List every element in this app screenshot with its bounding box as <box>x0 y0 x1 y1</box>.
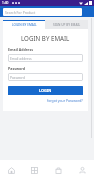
button[interactable]: Account <box>70 160 94 180</box>
button[interactable]: Email address <box>8 54 83 62</box>
button[interactable]: Cart <box>46 160 70 180</box>
button[interactable]: Password <box>8 73 83 81</box>
staticText: Password <box>8 66 26 71</box>
staticText: Search For Product <box>5 10 36 15</box>
staticText: LOGIN BY EMAIL <box>12 23 37 27</box>
staticText: forgot your Password? <box>47 98 83 103</box>
button[interactable]: SIGN UP BY EMAIL <box>45 20 88 29</box>
staticText: Email address <box>10 56 32 60</box>
staticText: Password <box>10 75 25 79</box>
button[interactable]: Categories <box>23 160 46 180</box>
button[interactable]: Search For Product <box>3 8 82 16</box>
staticText: SIGN UP BY EMAIL <box>53 23 81 27</box>
button[interactable]: forgot your Password? <box>47 98 83 103</box>
staticText: LOGIN BY EMAIL <box>21 34 70 42</box>
staticText: 1:40 <box>2 1 9 5</box>
button[interactable]: Home <box>0 160 23 180</box>
staticText: Email Address <box>8 47 34 52</box>
staticText: LOGIN <box>39 88 52 93</box>
button[interactable]: LOGIN <box>8 86 83 95</box>
button[interactable]: LOGIN BY EMAIL <box>3 20 45 29</box>
